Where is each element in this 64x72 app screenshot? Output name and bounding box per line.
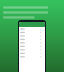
button[interactable] — [19, 27, 45, 72]
